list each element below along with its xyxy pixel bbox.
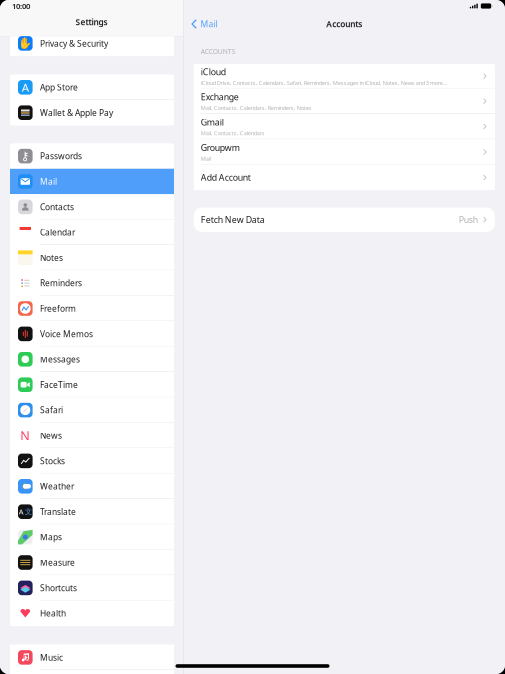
staticText: N xyxy=(20,427,30,444)
staticText: Shortcuts xyxy=(40,582,77,593)
staticText: Music xyxy=(40,652,63,663)
staticText: Maps xyxy=(40,531,62,543)
button[interactable]: A xyxy=(10,499,174,524)
button[interactable]: Music xyxy=(10,645,174,670)
staticText: Groupwm xyxy=(201,142,240,153)
button[interactable]: Calendar xyxy=(10,220,174,245)
staticText: Notes xyxy=(40,252,63,263)
staticText: Push xyxy=(459,214,478,226)
staticText: Add Account xyxy=(201,172,251,183)
staticText: Settings xyxy=(75,16,107,27)
button[interactable]: Weather xyxy=(10,474,174,499)
staticText: Passwords xyxy=(40,150,82,162)
staticText: Privacy & Security xyxy=(40,38,108,49)
button[interactable]: ✋ xyxy=(10,31,174,56)
button[interactable]: Health xyxy=(10,601,174,626)
staticText: Stocks xyxy=(40,455,65,466)
staticText: Weather xyxy=(40,481,74,492)
button[interactable]: Messages xyxy=(10,347,174,372)
staticText: iCloud xyxy=(201,66,226,78)
staticText: Calendar xyxy=(40,227,75,238)
staticText: ✋ xyxy=(18,37,32,50)
staticText: Accounts xyxy=(326,18,362,29)
staticText: Voice Memos xyxy=(40,328,93,339)
staticText: ACCOUNTS xyxy=(201,47,236,56)
staticText: Mail xyxy=(201,155,211,162)
button[interactable]: Shortcuts xyxy=(10,575,174,601)
staticText: iCloud Drive, Contacts, Calendars, Safar… xyxy=(201,79,447,86)
button[interactable]: Stocks xyxy=(10,448,174,474)
button[interactable]: Add Account xyxy=(194,165,495,190)
staticText: Mail, Contacts, Calendars, Reminders, No… xyxy=(201,104,312,111)
staticText: Mail, Contacts, Calendars xyxy=(201,129,265,137)
staticText: Gmail xyxy=(201,116,224,128)
button[interactable]: Notes xyxy=(10,245,174,270)
button[interactable]: Mail xyxy=(10,169,174,194)
staticText: ⚷ xyxy=(21,149,30,163)
button[interactable]: Wallet & Apple Pay xyxy=(10,100,174,125)
staticText: Wallet & Apple Pay xyxy=(40,107,113,118)
button[interactable]: Reminders xyxy=(10,270,174,296)
button[interactable]: Groupwm xyxy=(194,139,495,165)
button[interactable]: Safari xyxy=(10,397,174,423)
staticText: 文 xyxy=(25,507,32,516)
button[interactable]: A xyxy=(10,75,174,100)
button[interactable]: Exchange xyxy=(194,88,495,114)
staticText: Mail xyxy=(40,176,57,187)
staticText: Mail xyxy=(201,18,218,30)
staticText: Measure xyxy=(40,557,75,568)
button[interactable]: Voice Memos xyxy=(10,321,174,347)
button[interactable]: Mail xyxy=(184,14,225,34)
staticText: FaceTime xyxy=(40,379,78,390)
button[interactable]: N xyxy=(10,423,174,448)
staticText: Exchange xyxy=(201,91,239,103)
button[interactable]: Fetch New Data xyxy=(194,207,495,232)
staticText: Fetch New Data xyxy=(201,214,265,226)
button[interactable]: Freeform xyxy=(10,296,174,321)
staticText: A xyxy=(22,80,29,95)
button[interactable]: Contacts xyxy=(10,194,174,220)
staticText: A xyxy=(19,507,24,517)
button[interactable]: FaceTime xyxy=(10,372,174,397)
staticText: App Store xyxy=(40,82,78,93)
staticText: 10:00 xyxy=(12,1,30,11)
button[interactable]: Gmail xyxy=(194,114,495,139)
staticText: Safari xyxy=(40,404,63,416)
button[interactable]: iCloud xyxy=(194,64,495,88)
staticText: Messages xyxy=(40,354,80,365)
staticText: Health xyxy=(40,608,66,619)
button[interactable]: Maps xyxy=(10,524,174,550)
staticText: News xyxy=(40,430,62,441)
staticText: Contacts xyxy=(40,201,74,212)
staticText: Translate xyxy=(40,506,76,517)
button[interactable]: ⚷ xyxy=(10,143,174,169)
staticText: Freeform xyxy=(40,303,76,314)
button[interactable]: Measure xyxy=(10,550,174,575)
staticText: Reminders xyxy=(40,277,82,289)
